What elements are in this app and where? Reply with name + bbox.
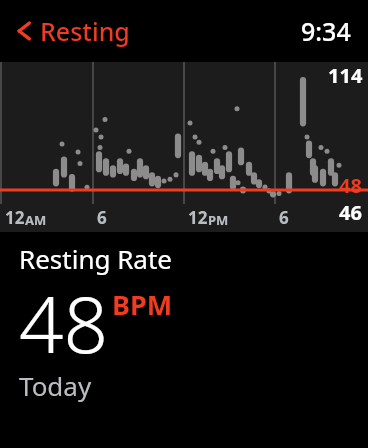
staticText: 46 — [316, 199, 362, 226]
staticText: 6 — [279, 206, 289, 229]
staticText: BPM — [112, 286, 173, 323]
staticText: 12 — [188, 206, 208, 229]
button[interactable]: Heart rate chart — [0, 62, 368, 232]
staticText: 9:34 — [301, 14, 351, 48]
button[interactable]: Resting Rate — [19, 241, 368, 417]
staticText: 6 — [97, 206, 107, 229]
staticText: Resting — [40, 14, 130, 48]
staticText: Today — [19, 368, 92, 403]
staticText: PM — [208, 211, 229, 229]
staticText: 48 — [316, 172, 362, 199]
staticText: 48 — [19, 270, 109, 376]
button[interactable]: Back — [17, 14, 130, 48]
staticText: Resting Rate — [19, 241, 173, 276]
staticText: AM — [25, 211, 47, 229]
staticText: 12 — [5, 206, 25, 229]
staticText: 114 — [328, 62, 363, 89]
